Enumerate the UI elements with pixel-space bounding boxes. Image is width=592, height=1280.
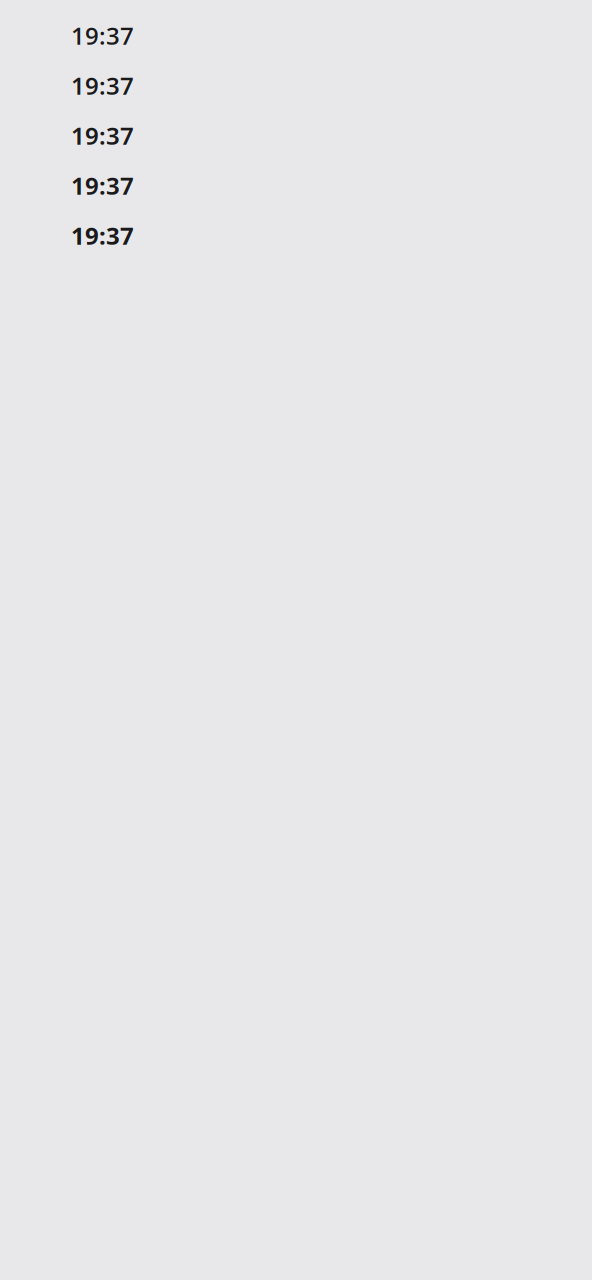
staticText: 19:37	[71, 69, 134, 102]
staticText: 19:37	[71, 219, 134, 252]
staticText: 19:37	[71, 19, 134, 52]
staticText: 19:37	[71, 119, 134, 152]
staticText: 19:37	[71, 169, 134, 202]
